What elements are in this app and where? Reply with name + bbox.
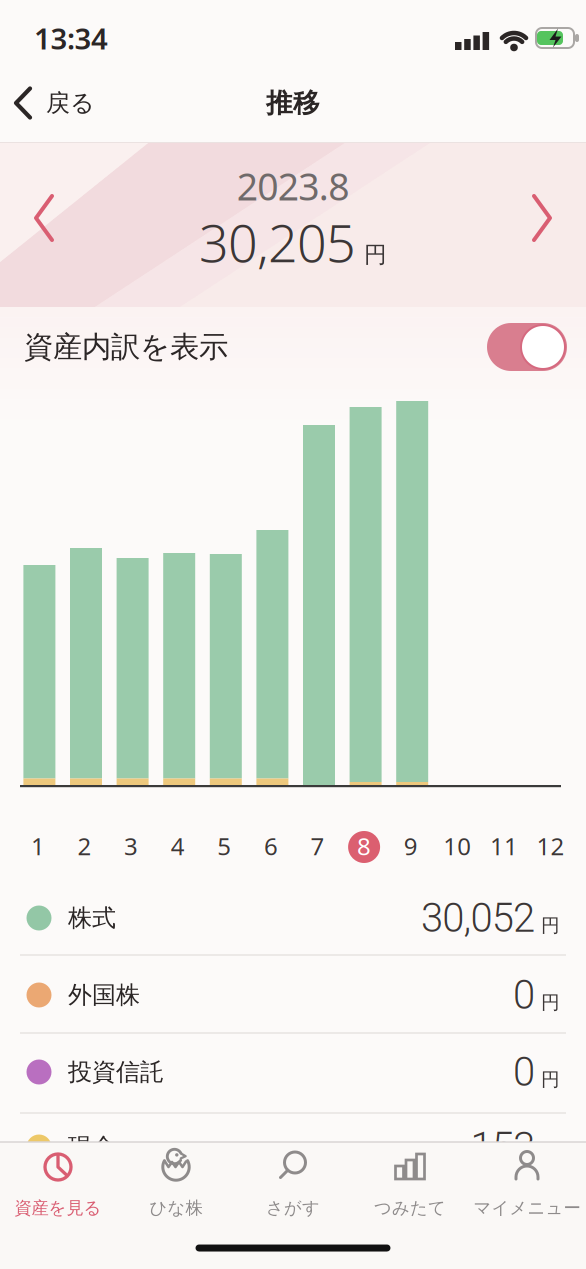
button[interactable]: 11月 [482,824,526,868]
staticText: つみたて [374,1197,446,1219]
staticText: 2 [77,830,91,862]
staticText: 円 [541,991,560,1014]
staticText: 円 [541,914,560,937]
button[interactable]: さがす [230,1142,356,1242]
button[interactable]: 戻る [14,75,118,131]
staticText: ひな株 [149,1197,202,1219]
staticText: 153 [471,1124,535,1170]
staticText: 30,205 [199,207,356,277]
staticText: 9 [404,830,418,862]
button[interactable]: 前の月 [26,190,62,246]
staticText: 30,052 [421,895,535,941]
staticText: マイメニュー [473,1197,580,1219]
button[interactable]: つみたて [347,1142,473,1242]
staticText: 資産内訳を表示 [24,329,228,365]
staticText: 11 [490,830,518,862]
staticText: 現金 [68,1132,116,1162]
staticText: 3 [124,830,138,862]
staticText: 4 [171,830,185,862]
staticText: 資産を見る [14,1197,101,1219]
staticText: 投資信託 [68,1057,164,1087]
button[interactable]: 1月 [16,824,60,868]
staticText: 円 [364,241,387,268]
staticText: 推移 [266,87,320,119]
staticText: さがす [266,1197,320,1219]
staticText: 13:34 [34,18,108,57]
button[interactable]: マイメニュー [464,1142,586,1242]
button[interactable]: ひな株 [113,1142,239,1242]
button[interactable]: 10月 [435,824,479,868]
staticText: 10 [443,830,471,862]
staticText: 0 [513,1049,535,1095]
staticText: 6 [264,830,278,862]
staticText: 株式 [68,903,116,933]
staticText: 7 [310,830,324,862]
button[interactable]: 5月 [202,824,246,868]
button[interactable]: 4月 [156,824,200,868]
button[interactable]: 12月 [528,824,572,868]
button[interactable]: 6月 [249,824,293,868]
button[interactable]: 8月 [342,824,386,868]
staticText: 円 [541,1068,560,1091]
staticText: 外国株 [68,980,140,1010]
staticText: 8 [357,830,371,862]
button[interactable]: 9月 [389,824,433,868]
button[interactable]: 次の月 [524,190,560,246]
button[interactable]: 資産を見る [0,1142,121,1242]
button[interactable]: 資産内訳を表示 [487,323,567,371]
staticText: 12 [536,830,564,862]
staticText: 戻る [46,88,95,118]
staticText: 2023.8 [237,161,349,211]
button[interactable]: 3月 [109,824,153,868]
staticText: 0 [513,972,535,1018]
staticText: 1 [31,830,45,862]
button[interactable]: 7月 [295,824,339,868]
button[interactable]: 2月 [62,824,106,868]
staticText: 5 [217,830,231,862]
